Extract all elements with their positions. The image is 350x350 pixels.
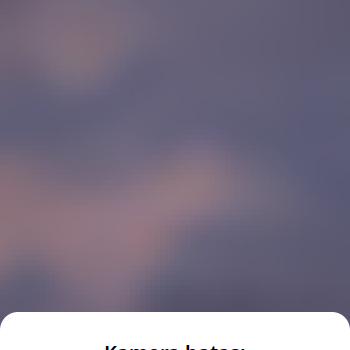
staticText: Kamera hatası xyxy=(104,339,246,350)
